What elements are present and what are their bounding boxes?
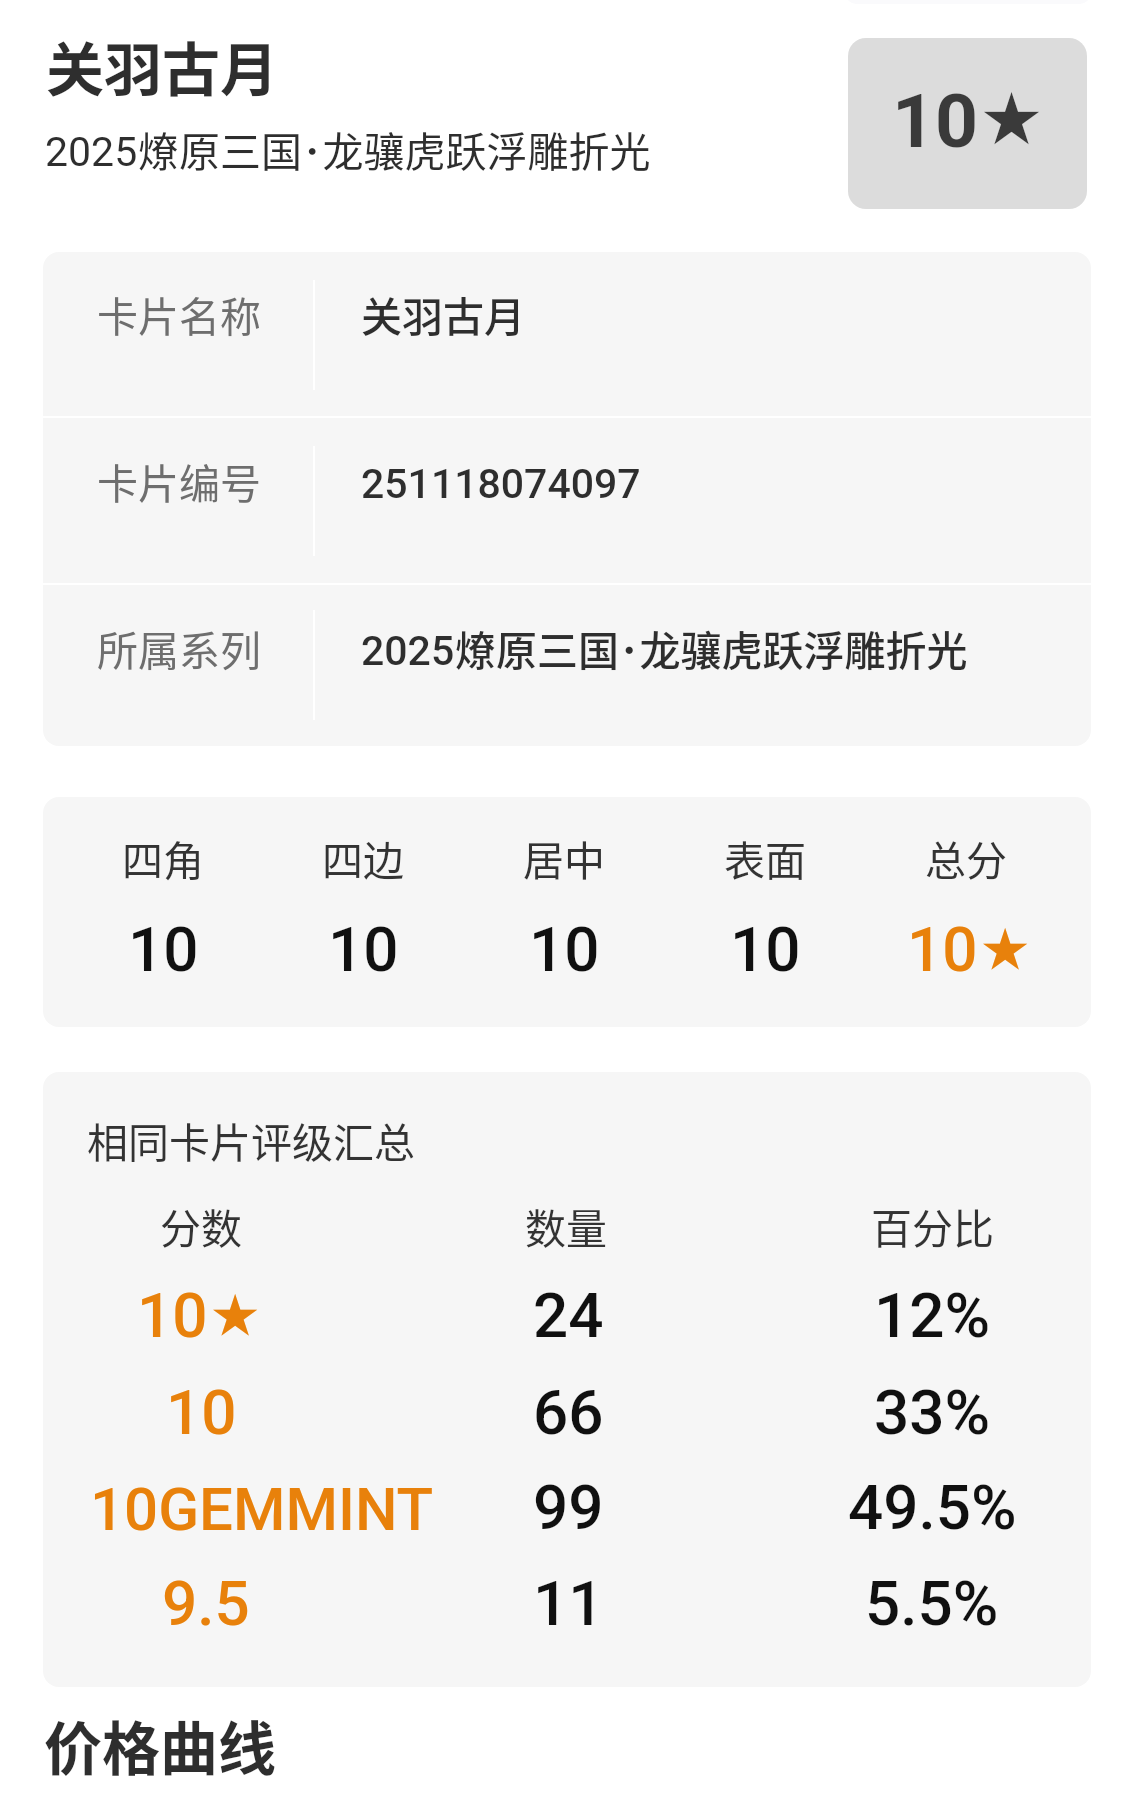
staticText: 燎原三国･龙骧虎跃浮雕折光 <box>138 119 651 178</box>
staticText: 10 <box>328 913 399 986</box>
staticText: 99 <box>533 1471 604 1544</box>
staticText: 49.5% <box>848 1471 1017 1544</box>
staticText: 总分 <box>925 828 1007 887</box>
staticText: 数量 <box>525 1196 607 1255</box>
staticText: 百分比 <box>871 1196 994 1255</box>
staticText: 10GEMMINT <box>90 1474 434 1544</box>
staticText: 10 <box>907 913 978 986</box>
staticText: 所属系列 <box>97 618 261 677</box>
staticText: 分数 <box>160 1196 242 1255</box>
staticText: 10 <box>137 1279 208 1352</box>
button[interactable]: 四角 <box>43 797 1091 1027</box>
staticText: 价格曲线 <box>44 1703 277 1787</box>
staticText: ★ <box>980 904 1031 998</box>
staticText: 12% <box>874 1279 991 1352</box>
staticText: 10 <box>529 913 600 986</box>
staticText: 表面 <box>724 828 806 887</box>
staticText: 5.5% <box>865 1567 999 1640</box>
staticText: 四边 <box>322 828 404 887</box>
staticText: 11 <box>533 1567 604 1640</box>
button[interactable]: Overall grade 10 star <box>848 38 1087 209</box>
staticText: 2025 <box>45 128 138 176</box>
staticText: 9.5 <box>162 1567 250 1640</box>
staticText: 卡片编号 <box>97 451 261 510</box>
staticText: 10 <box>166 1376 237 1449</box>
staticText: 关羽古月 <box>361 284 525 343</box>
staticText: 10 <box>128 913 199 986</box>
button[interactable]: 卡片名称 <box>43 252 1091 417</box>
staticText: 四角 <box>122 828 204 887</box>
staticText: ★ <box>210 1270 261 1364</box>
staticText: 2025 <box>361 627 455 675</box>
staticText: ★ <box>980 62 1044 180</box>
staticText: 相同卡片评级汇总 <box>87 1110 415 1169</box>
staticText: 33% <box>874 1376 991 1449</box>
staticText: 251118074097 <box>361 460 641 508</box>
staticText: 居中 <box>523 828 605 887</box>
staticText: 10 <box>892 77 979 165</box>
button[interactable]: 所属系列 <box>43 584 1091 746</box>
staticText: 关羽古月 <box>46 24 279 108</box>
staticText: 24 <box>533 1279 604 1352</box>
staticText: 10 <box>730 913 801 986</box>
button[interactable]: 相同卡片评级汇总 <box>43 1072 1091 1687</box>
staticText: 燎原三国･龙骧虎跃浮雕折光 <box>455 618 968 677</box>
button[interactable]: 卡片编号 <box>43 417 1091 584</box>
staticText: 卡片名称 <box>97 284 261 343</box>
staticText: 66 <box>533 1376 604 1449</box>
